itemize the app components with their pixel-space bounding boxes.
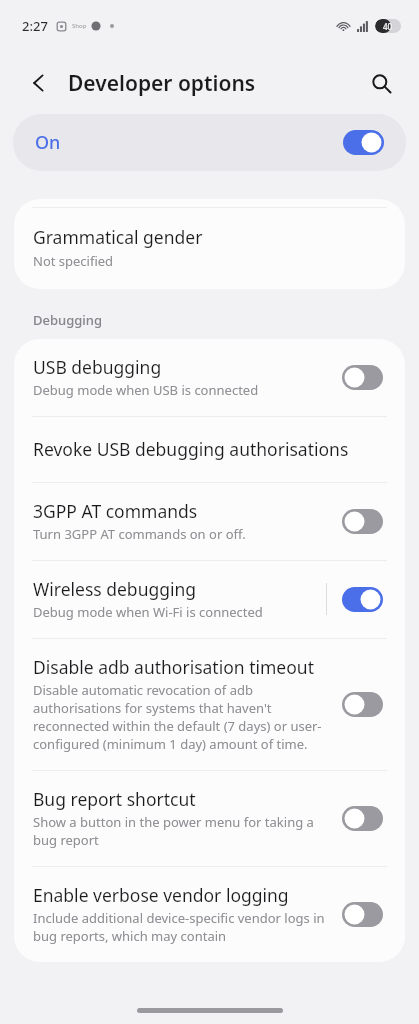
- staticText: Debug mode when USB is connected: [33, 381, 259, 399]
- button[interactable]: USB debugging: [14, 339, 405, 416]
- button[interactable]: Grammatical gender: [14, 208, 405, 289]
- staticText: Bug report shortcut: [33, 787, 196, 811]
- button[interactable]: Disable adb authorisation timeout: [342, 692, 383, 717]
- button[interactable]: Wireless debugging: [14, 561, 405, 638]
- staticText: Not specified: [33, 252, 114, 270]
- button[interactable]: Bug report shortcut: [342, 806, 383, 831]
- staticText: On: [35, 130, 61, 155]
- staticText: Disable adb authorisation timeout: [33, 655, 314, 679]
- button[interactable]: On: [13, 114, 406, 171]
- staticText: Enable verbose vendor logging: [33, 883, 289, 907]
- staticText: Wireless debugging: [33, 577, 197, 601]
- staticText: 3GPP AT commands: [33, 499, 198, 523]
- staticText: Shop: [72, 22, 87, 30]
- staticText: Revoke USB debugging authorisations: [33, 437, 349, 461]
- staticText: 2:27: [22, 17, 48, 35]
- button[interactable]: Revoke USB debugging authorisations: [14, 417, 405, 482]
- staticText: Disable automatic revocation of adb auth…: [33, 681, 330, 753]
- button[interactable]: Enable verbose vendor logging: [342, 902, 383, 927]
- staticText: Grammatical gender: [33, 225, 203, 249]
- button[interactable]: USB debugging: [342, 365, 383, 390]
- button[interactable]: Wireless debugging: [342, 587, 383, 612]
- button[interactable]: Disable adb authorisation timeout: [14, 639, 405, 770]
- button[interactable]: Bug report shortcut: [14, 771, 405, 866]
- staticText: Debugging: [33, 311, 103, 329]
- button[interactable]: 3GPP AT commands: [14, 483, 405, 560]
- button[interactable]: Back: [18, 62, 60, 104]
- button[interactable]: Enable verbose vendor logging: [14, 867, 405, 962]
- button[interactable]: 3GPP AT commands: [342, 509, 383, 534]
- staticText: Turn 3GPP AT commands on or off.: [33, 525, 246, 543]
- staticText: Show a button in the power menu for taki…: [33, 813, 330, 849]
- staticText: Developer options: [68, 69, 256, 98]
- staticText: USB debugging: [33, 355, 162, 379]
- staticText: 40: [383, 21, 393, 32]
- button[interactable]: Search: [359, 61, 403, 105]
- staticText: Include additional device-specific vendo…: [33, 909, 330, 945]
- staticText: Debug mode when Wi-Fi is connected: [33, 603, 263, 621]
